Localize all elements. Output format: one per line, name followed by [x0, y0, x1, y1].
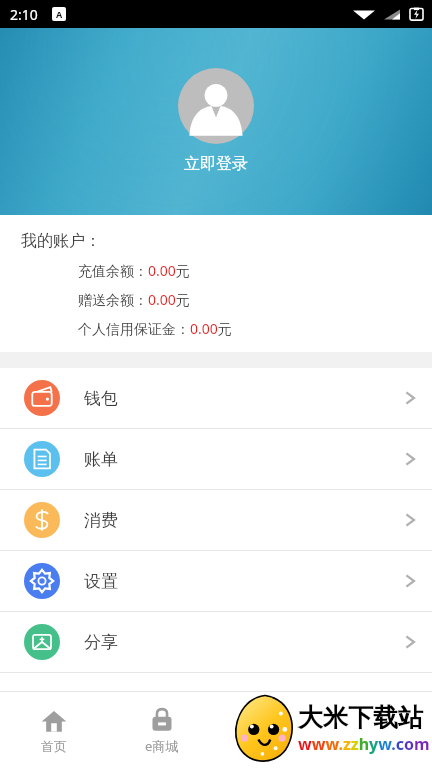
staticText: 钱包	[84, 388, 118, 409]
button[interactable]: 首页	[0, 692, 108, 768]
staticText: 赠送余额：0.00元	[78, 290, 190, 309]
staticText: 首页	[41, 738, 67, 754]
button[interactable]: 消费	[0, 490, 432, 550]
button[interactable]: 分享	[0, 612, 432, 672]
staticText: 充值余额：0.00元	[78, 261, 190, 280]
button[interactable]: e商城	[108, 692, 216, 768]
staticText: 账单	[84, 449, 118, 470]
button[interactable]: 设置	[0, 551, 432, 611]
staticText: 2:10	[10, 5, 38, 24]
button[interactable]: 钱包	[0, 368, 432, 428]
staticText: www.zzhyw.com	[298, 733, 430, 755]
staticText: e商城	[145, 737, 179, 755]
button[interactable]: 账单	[0, 429, 432, 489]
staticText: 分享	[84, 632, 118, 653]
button[interactable]: 立即登录	[0, 28, 432, 215]
staticText: 设置	[84, 571, 118, 592]
staticText: 个人信用保证金：0.00元	[78, 319, 232, 338]
staticText: 我的账户：	[21, 231, 101, 251]
staticText: A	[56, 8, 63, 20]
staticText: 大米下载站	[298, 702, 423, 733]
staticText: 消费	[84, 510, 118, 531]
staticText: 立即登录	[184, 154, 248, 174]
